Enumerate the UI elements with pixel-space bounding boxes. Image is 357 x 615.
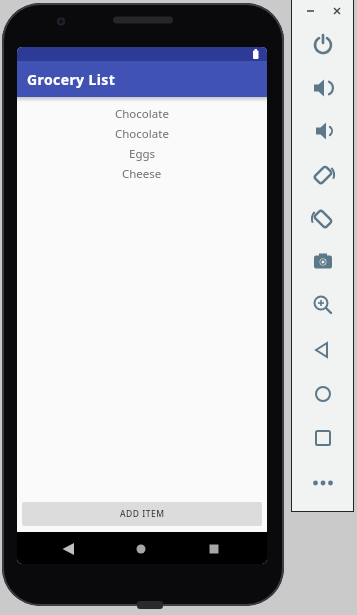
- staticText: Chocolate: [115, 126, 169, 142]
- button[interactable]: [291, 153, 354, 196]
- staticText: ADD ITEM: [120, 508, 165, 520]
- button[interactable]: [291, 67, 354, 110]
- button[interactable]: [291, 110, 354, 153]
- button[interactable]: Eggs: [17, 144, 267, 164]
- button[interactable]: [291, 239, 354, 282]
- button[interactable]: Cheese: [17, 164, 267, 184]
- button[interactable]: [184, 532, 267, 564]
- button[interactable]: [291, 411, 354, 454]
- button[interactable]: [291, 282, 354, 325]
- button[interactable]: [291, 196, 354, 239]
- staticText: Cheese: [122, 166, 162, 182]
- button[interactable]: [291, 454, 354, 497]
- button[interactable]: [291, 325, 354, 368]
- staticText: Chocolate: [115, 106, 169, 122]
- button[interactable]: [310, 0, 332, 20]
- button[interactable]: Chocolate: [17, 104, 267, 124]
- button[interactable]: [101, 532, 184, 564]
- button[interactable]: Chocolate: [17, 124, 267, 144]
- button[interactable]: [17, 532, 101, 564]
- staticText: Eggs: [129, 146, 156, 162]
- button[interactable]: [291, 368, 354, 411]
- button[interactable]: [291, 24, 354, 67]
- button[interactable]: [332, 0, 354, 20]
- button[interactable]: ADD ITEM: [22, 502, 262, 526]
- staticText: Grocery List: [27, 70, 116, 89]
